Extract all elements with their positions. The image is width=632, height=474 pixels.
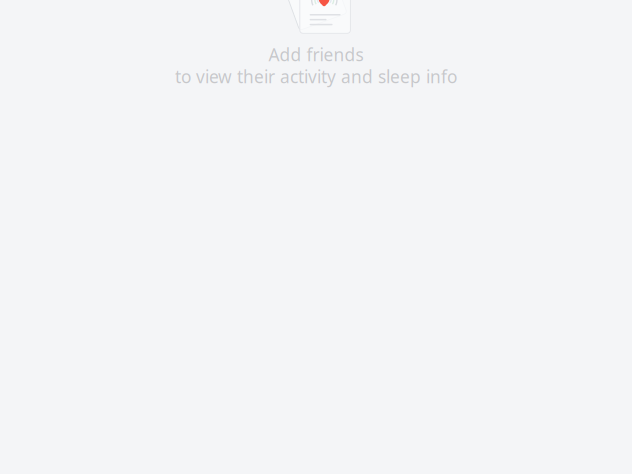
staticText: to view their activity and sleep info: [175, 65, 457, 88]
staticText: Add friends: [268, 43, 363, 66]
